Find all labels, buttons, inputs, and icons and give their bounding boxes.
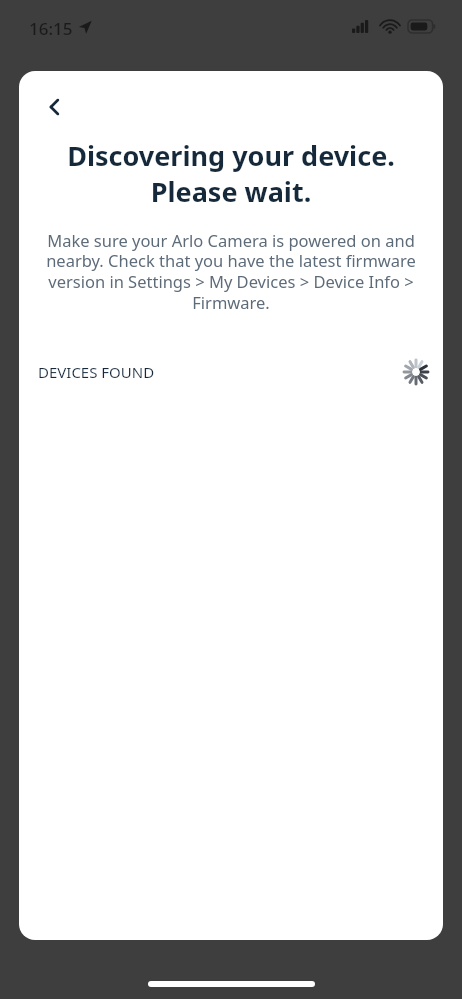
staticText: Make sure your Arlo Camera is powered on… — [33, 229, 429, 314]
staticText: 16:15 — [29, 17, 73, 40]
staticText: DEVICES FOUND — [38, 362, 155, 382]
staticText: Discovering your device. Please wait. — [41, 137, 421, 210]
button[interactable]: Back — [31, 83, 79, 131]
